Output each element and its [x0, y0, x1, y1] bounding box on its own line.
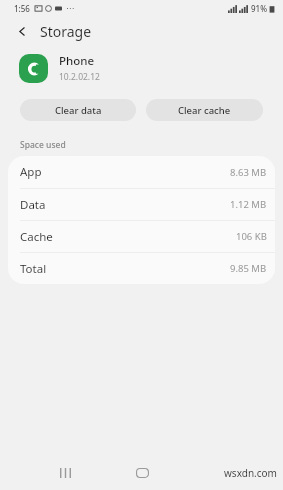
button[interactable]: Clear data	[20, 99, 136, 121]
staticText: 9.85 MB	[230, 262, 267, 275]
staticText: App	[20, 164, 42, 180]
button[interactable]: Cache	[8, 221, 275, 252]
button[interactable]: App	[8, 156, 275, 188]
button[interactable]: Data	[8, 189, 275, 220]
staticText: 8.63 MB	[230, 166, 267, 179]
staticText: Clear data	[55, 104, 102, 117]
staticText: wsxdn.com	[224, 466, 277, 480]
staticText: Clear cache	[178, 104, 231, 117]
staticText: 1:56	[14, 3, 30, 14]
staticText: 10.2.02.12	[59, 71, 100, 83]
button[interactable]: Total	[8, 253, 275, 284]
staticText: 91%	[251, 3, 267, 14]
staticText: ⋯	[66, 4, 74, 13]
staticText: Total	[20, 261, 47, 277]
staticText: Data	[20, 197, 46, 213]
staticText: Storage	[40, 22, 92, 41]
staticText: 1.12 MB	[230, 198, 267, 211]
button[interactable]: Recent apps	[48, 456, 82, 490]
staticText: Phone	[59, 53, 95, 69]
staticText: Cache	[20, 229, 53, 245]
button[interactable]: Back	[10, 19, 34, 43]
button[interactable]: Clear cache	[146, 99, 263, 121]
staticText: 106 KB	[236, 230, 267, 243]
staticText: Space used	[20, 139, 66, 151]
button[interactable]: Home	[125, 456, 159, 490]
